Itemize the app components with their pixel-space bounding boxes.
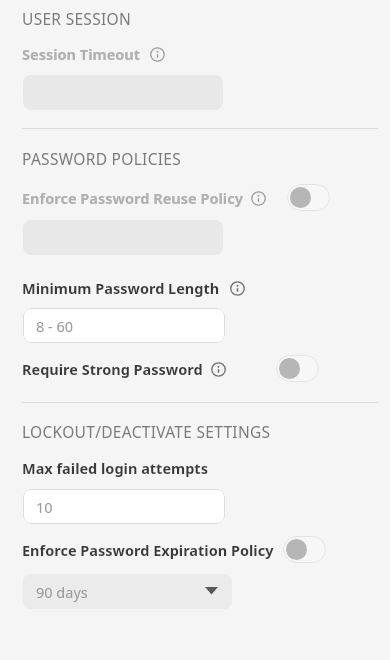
staticText: Session Timeout bbox=[22, 44, 141, 64]
other: More information bbox=[251, 191, 266, 206]
staticText: Require Strong Password bbox=[22, 359, 203, 379]
button[interactable]: 8 - 60 bbox=[23, 308, 225, 343]
other: More information bbox=[150, 47, 165, 62]
button[interactable]: Toggle bbox=[287, 184, 330, 211]
other: More information bbox=[230, 281, 245, 296]
staticText: 90 days bbox=[36, 582, 88, 602]
staticText: Enforce Password Reuse Policy bbox=[22, 188, 243, 208]
staticText: LOCKOUT/DEACTIVATE SETTINGS bbox=[22, 421, 271, 442]
staticText: USER SESSION bbox=[22, 8, 132, 29]
button[interactable]: 10 bbox=[23, 489, 225, 524]
staticText: 10 bbox=[36, 497, 53, 517]
staticText: 8 - 60 bbox=[36, 316, 74, 336]
button[interactable]: 90 days bbox=[23, 574, 232, 609]
button[interactable]: Toggle bbox=[276, 355, 319, 382]
staticText: Max failed login attempts bbox=[22, 458, 208, 478]
button[interactable]: Toggle bbox=[283, 536, 326, 563]
staticText: PASSWORD POLICIES bbox=[22, 148, 182, 169]
staticText: Enforce Password Expiration Policy bbox=[22, 540, 274, 560]
other: More information bbox=[211, 362, 226, 377]
staticText: Minimum Password Length bbox=[22, 278, 220, 298]
